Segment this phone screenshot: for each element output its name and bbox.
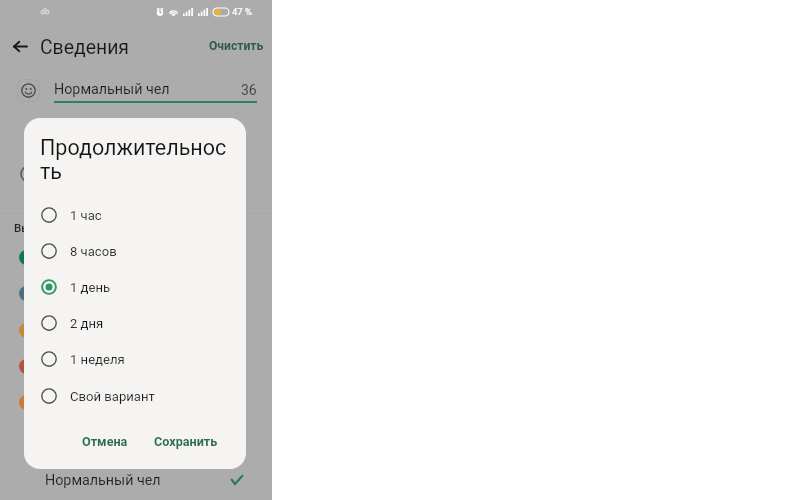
staticText: Нормальный чел (45, 472, 161, 489)
staticText: 1 неделя (70, 352, 125, 367)
staticText: Выберите (14, 221, 68, 234)
staticText: 1 день (70, 280, 111, 295)
button[interactable]: 1 неделя (24, 341, 246, 377)
button[interactable]: 8 часов (24, 233, 246, 269)
staticText: 1 час (70, 208, 102, 223)
button[interactable]: Нормальный чел (0, 469, 272, 491)
staticText: 47 % (232, 6, 252, 17)
button[interactable]: 1 день (24, 269, 246, 305)
staticText: Очистить (209, 39, 264, 53)
button[interactable]: Emoji (17, 79, 40, 102)
button[interactable]: Очистить (199, 33, 274, 59)
staticText: Продолжительность (40, 135, 230, 185)
button[interactable]: Отмена (70, 426, 140, 457)
button[interactable]: Свой вариант (24, 378, 246, 414)
button[interactable]: 2 дня (24, 305, 246, 341)
staticText: 8 часов (70, 244, 117, 259)
staticText: Отмена (82, 434, 128, 449)
staticText: Нормальный чел (54, 81, 170, 98)
staticText: Свой вариант (70, 389, 155, 404)
staticText: 2 дня (70, 316, 104, 331)
staticText: Сохранить (154, 434, 218, 449)
button[interactable]: 1 час (24, 197, 246, 233)
button[interactable]: Сохранить (142, 426, 230, 457)
staticText: Сведения (40, 36, 129, 59)
staticText: 36 (241, 82, 257, 98)
button[interactable]: Back (2, 28, 38, 64)
